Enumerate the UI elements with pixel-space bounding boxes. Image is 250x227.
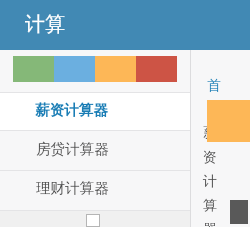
staticText: 薪资计算器 — [35, 101, 108, 119]
button[interactable]: 首 — [205, 77, 223, 95]
staticText: 首 — [207, 77, 221, 95]
button[interactable]: 薪资计算器 — [0, 93, 190, 130]
staticText: 计算 — [25, 12, 65, 37]
staticText: 房贷计算器 — [36, 140, 109, 158]
button[interactable]: 更多 — [86, 214, 100, 227]
staticText: 理财计算器 — [36, 179, 109, 197]
button[interactable]: 计算 — [0, 0, 250, 50]
other: 分类色块 — [13, 56, 177, 82]
button[interactable]: 房贷计算器 — [0, 131, 190, 170]
button[interactable]: 薪 资 计 算 器 — [203, 124, 217, 227]
button[interactable]: 理财计算器 — [0, 171, 190, 210]
